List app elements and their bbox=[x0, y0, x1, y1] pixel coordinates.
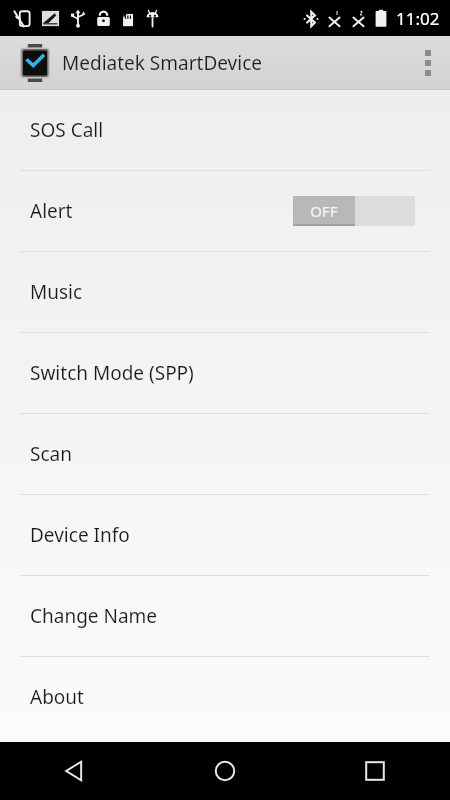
button[interactable]: Switch Mode (SPP) bbox=[0, 333, 450, 413]
button[interactable]: Recent apps bbox=[300, 742, 450, 800]
button[interactable]: SOS Call bbox=[0, 90, 450, 170]
staticText: SOS Call bbox=[30, 117, 104, 143]
staticText: Change Name bbox=[30, 603, 158, 629]
staticText: OFF bbox=[310, 201, 338, 221]
button[interactable]: Home bbox=[150, 742, 300, 800]
staticText: Mediatek SmartDevice bbox=[62, 50, 263, 76]
staticText: About bbox=[30, 684, 84, 710]
staticText: 11:02 bbox=[396, 7, 440, 30]
button[interactable]: Back bbox=[0, 742, 150, 800]
staticText: Alert bbox=[30, 198, 73, 224]
button[interactable]: Change Name bbox=[0, 576, 450, 656]
staticText: Device Info bbox=[30, 522, 130, 548]
staticText: Switch Mode (SPP) bbox=[30, 360, 194, 386]
button[interactable]: Scan bbox=[0, 414, 450, 494]
button[interactable]: Alert bbox=[0, 171, 450, 251]
button[interactable]: About bbox=[0, 657, 450, 737]
button[interactable]: Device Info bbox=[0, 495, 450, 575]
button[interactable]: Alert toggle, off bbox=[293, 196, 415, 226]
button[interactable]: More options bbox=[406, 36, 450, 90]
button[interactable]: Music bbox=[0, 252, 450, 332]
staticText: Music bbox=[30, 279, 83, 305]
staticText: Scan bbox=[30, 441, 72, 467]
